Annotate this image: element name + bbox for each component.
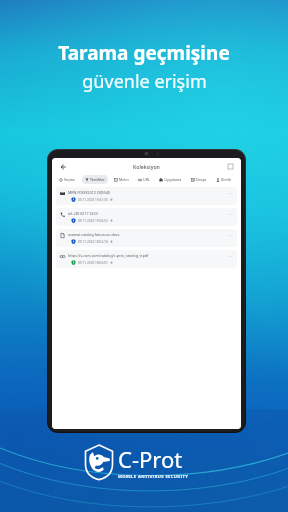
staticText: 09.11.2023 18:03:01 [78,261,108,265]
other: C-Prot Mobile Antivirus Security [84,444,189,480]
staticText: güvenle erişim [82,69,207,94]
button[interactable]: tel:+90 0217 2233 [60,211,233,223]
staticText: asamat catalog fatura-nu.docx [68,232,120,237]
staticText: 09.11.2023 19:04:52 [78,219,108,223]
staticText: 09.11.2023 18:52:18 [78,240,108,244]
staticText: C-Prot [118,444,183,474]
staticText: Tarama geçmişine [58,40,230,66]
staticText: Dosya [196,177,207,182]
button[interactable]: Options [225,161,236,172]
staticText: MOBILE ANTIVIRUS SECURITY [118,474,189,480]
button[interactable]: Metin [114,175,129,184]
staticText: Tercihler [90,177,105,182]
staticText: MRN FCBFX2012 29J5S4X [68,190,111,195]
button[interactable]: More options [227,211,233,217]
staticText: Seçme [64,177,76,182]
button[interactable]: More options [227,232,233,238]
staticText: Kimlik [221,177,232,182]
button[interactable]: asamat catalog fatura-nu.docx [60,232,233,244]
button[interactable]: URL [138,175,150,184]
staticText: URL [143,177,150,182]
button[interactable]: Seçme [59,175,76,184]
button[interactable]: https://s-cont.com/catalog/c-prot_catalo… [60,253,233,265]
staticText: Metin [119,177,129,182]
staticText: tel:+90 0217 2233 [68,211,98,216]
button[interactable]: Dosya [191,175,207,184]
staticText: Uygulama [164,177,182,182]
button[interactable]: Tercihler [85,175,105,184]
staticText: https://s-cont.com/catalog/c-prot_catalo… [68,253,149,258]
staticText: Koleksiyon [133,163,160,170]
button[interactable]: Kimlik [216,175,232,184]
button[interactable]: MRN FCBFX2012 29J5S4X [60,190,233,202]
button[interactable]: Uygulama [159,175,182,184]
button[interactable]: More options [227,253,233,259]
button[interactable]: More options [227,190,233,196]
staticText: 09.11.2023 19:41:35 [78,198,108,202]
button[interactable]: Back [57,161,68,172]
